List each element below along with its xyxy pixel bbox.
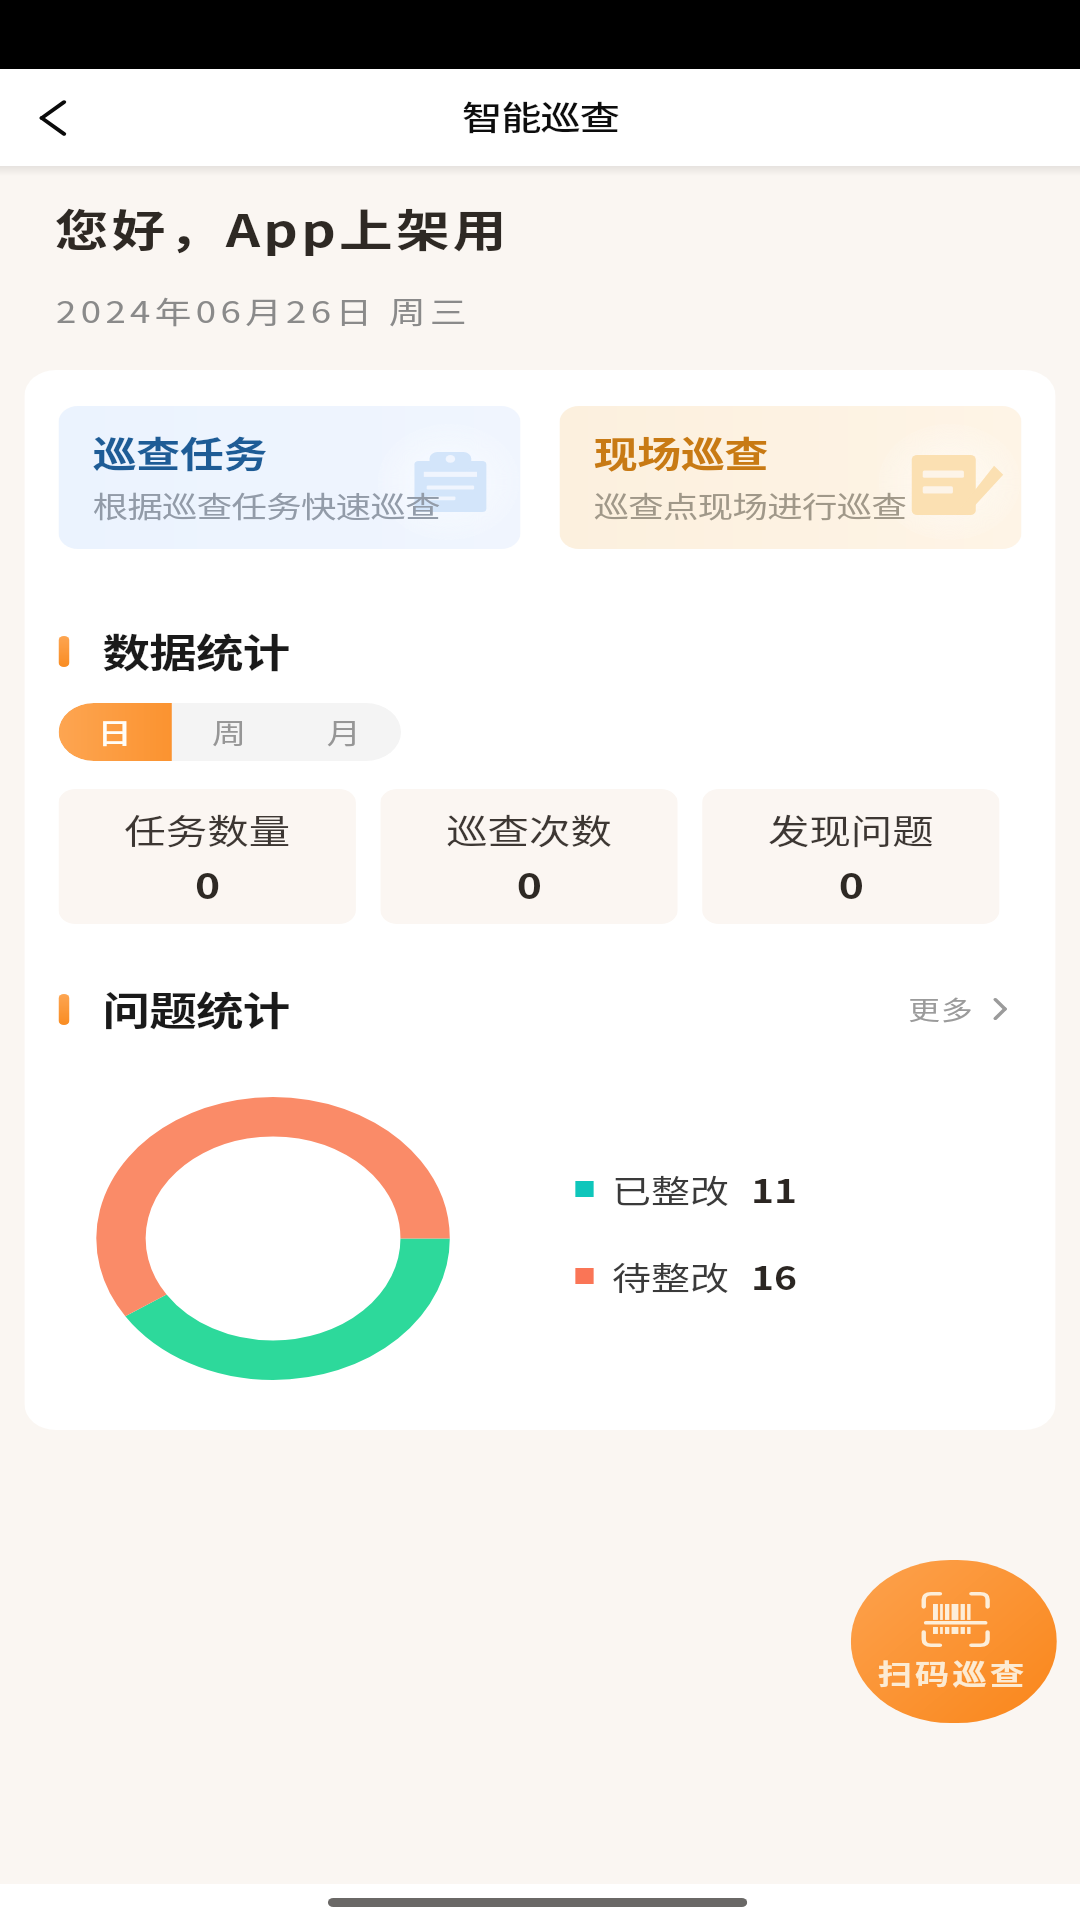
- staticText: 周: [212, 712, 247, 753]
- staticText: 0: [517, 858, 542, 909]
- staticText: 0: [195, 858, 221, 909]
- staticText: 任务数量: [124, 805, 290, 854]
- staticText: 智能巡查: [462, 92, 619, 140]
- button[interactable]: 周: [172, 703, 286, 761]
- button[interactable]: 日: [58, 703, 172, 761]
- button[interactable]: 任务数量: [58, 789, 356, 924]
- button[interactable]: 返回: [24, 90, 93, 146]
- staticText: 现场巡查: [594, 426, 769, 478]
- button[interactable]: 更多: [908, 990, 1007, 1028]
- button[interactable]: 发现问题: [702, 789, 999, 924]
- staticText: 您好，App上架用: [55, 196, 511, 260]
- staticText: 发现问题: [768, 805, 934, 854]
- staticText: 2024年06月26日 周三: [56, 288, 472, 331]
- staticText: 日: [97, 712, 133, 753]
- staticText: 11: [751, 1166, 797, 1212]
- staticText: 已整改: [612, 1166, 730, 1212]
- staticText: 待整改: [612, 1253, 730, 1299]
- staticText: 根据巡查任务快速巡查: [93, 484, 441, 526]
- staticText: 巡查任务: [93, 426, 268, 478]
- button[interactable]: 月: [286, 703, 401, 761]
- staticText: 扫码巡查: [878, 1653, 1028, 1694]
- staticText: 0: [839, 858, 864, 909]
- button[interactable]: 巡查任务: [58, 406, 520, 549]
- staticText: 数据统计: [102, 622, 290, 678]
- staticText: 更多: [908, 990, 974, 1028]
- staticText: 巡查点现场进行巡查: [594, 484, 907, 526]
- button[interactable]: 巡查次数: [380, 789, 678, 924]
- staticText: 16: [751, 1253, 797, 1299]
- staticText: 月: [327, 712, 362, 753]
- staticText: 巡查次数: [446, 805, 612, 854]
- staticText: 问题统计: [102, 980, 290, 1036]
- button[interactable]: 现场巡查: [559, 406, 1021, 549]
- button[interactable]: 扫码巡查: [851, 1560, 1057, 1723]
